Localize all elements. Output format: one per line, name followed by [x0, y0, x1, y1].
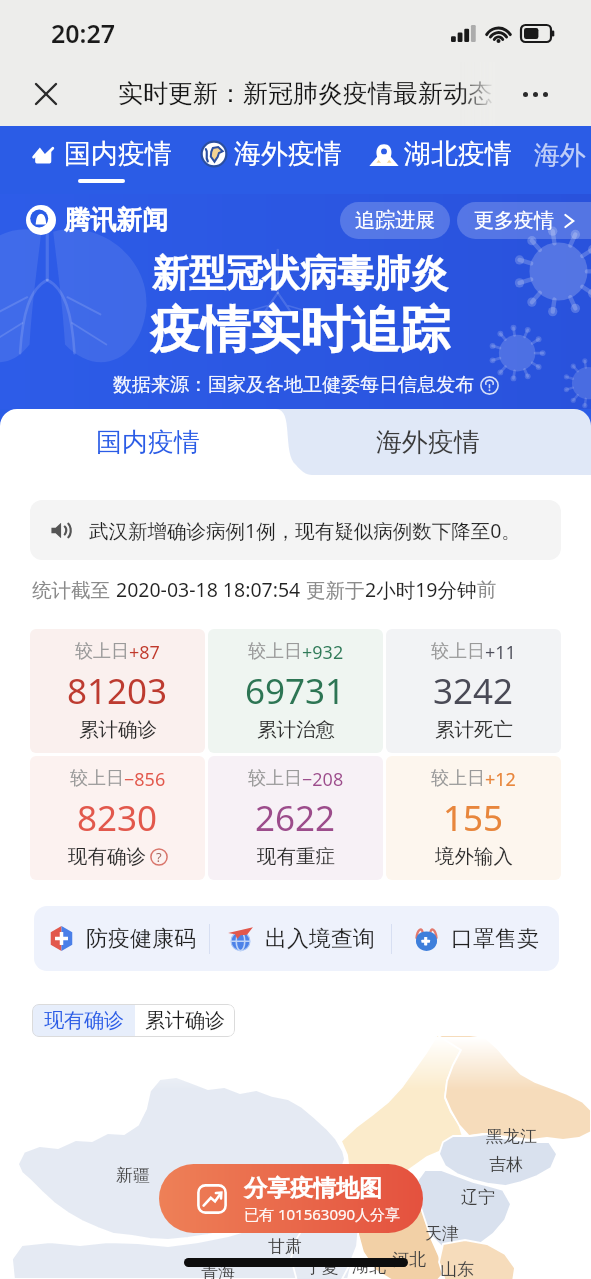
button[interactable]: 追踪进展 — [340, 202, 450, 239]
staticText: 统计截至 — [32, 576, 116, 603]
button[interactable]: 更多疫情 — [457, 202, 591, 239]
staticText: 海外疫情 — [376, 426, 480, 459]
button[interactable]: More options — [523, 72, 567, 116]
staticText: +11 — [485, 640, 516, 665]
staticText: 吉林 — [489, 1154, 523, 1175]
staticText: 累计治愈 — [257, 717, 335, 742]
staticText: 3242 — [433, 667, 514, 715]
staticText: 山东 — [440, 1259, 474, 1279]
staticText: 分享疫情地图 — [244, 1174, 382, 1203]
staticText: 国内疫情 — [96, 426, 200, 459]
button[interactable]: 较上日 — [208, 629, 383, 753]
staticText: 海外疫情 — [234, 137, 342, 171]
staticText: 现有确诊 — [68, 844, 146, 869]
staticText: −856 — [124, 767, 166, 792]
staticText: 前 — [477, 577, 497, 602]
button[interactable]: 现有确诊 — [32, 1004, 135, 1037]
staticText: 青海 — [201, 1262, 235, 1279]
staticText: 出入境查询 — [265, 925, 375, 953]
staticText: 黑龙江 — [486, 1126, 537, 1147]
staticText: 69731 — [245, 667, 346, 715]
staticText: 较上日 — [431, 640, 485, 663]
staticText: 数据来源：国家及各地卫健委每日信息发布 — [113, 373, 474, 397]
staticText: 20:27 — [51, 16, 116, 50]
staticText: 口罩售卖 — [451, 925, 539, 953]
staticText: 宁夏 — [305, 1257, 339, 1278]
button[interactable]: 国内疫情 — [0, 409, 312, 475]
button[interactable]: Close — [24, 72, 68, 116]
staticText: 防疫健康码 — [86, 925, 196, 953]
staticText: 湖北疫情 — [404, 137, 512, 171]
staticText: 追踪进展 — [355, 208, 435, 233]
staticText: 2622 — [255, 794, 336, 842]
button[interactable]: 出入境查询 — [210, 906, 391, 971]
staticText: 境外输入 — [435, 844, 513, 869]
staticText: 较上日 — [431, 767, 485, 790]
staticText: 较上日 — [75, 640, 129, 663]
staticText: 天津 — [425, 1223, 459, 1244]
staticText: 河北 — [392, 1249, 426, 1270]
staticText: 累计确诊 — [145, 1008, 225, 1033]
staticText: 新疆 — [116, 1165, 150, 1186]
staticText: 较上日 — [248, 640, 302, 663]
staticText: 新型冠状病毒肺炎 — [152, 250, 448, 297]
staticText: −208 — [302, 767, 344, 792]
staticText: +87 — [129, 640, 160, 665]
button[interactable]: 海外疫情 — [245, 409, 591, 475]
button[interactable]: 较上日 — [386, 629, 561, 753]
staticText: +932 — [302, 640, 344, 665]
button[interactable]: 较上日 — [208, 756, 383, 880]
staticText: 武汉新增确诊病例1例，现有疑似病例数下降至0。 — [89, 517, 521, 544]
staticText: +12 — [485, 767, 516, 792]
staticText: 155 — [443, 794, 504, 842]
staticText: 实时更新：新冠肺炎疫情最新动态 — [118, 78, 493, 109]
button[interactable]: 海外疫情 — [201, 137, 342, 183]
button[interactable]: 较上日 — [386, 756, 561, 880]
staticText: 国内疫情 — [64, 137, 172, 171]
staticText: 湖北 — [352, 1256, 386, 1277]
staticText: 海外 — [534, 139, 586, 172]
staticText: 现有确诊 — [44, 1008, 124, 1033]
staticText: 较上日 — [248, 767, 302, 790]
button[interactable]: 较上日 — [30, 756, 205, 880]
button[interactable]: 较上日 — [30, 629, 205, 753]
staticText: 8230 — [77, 794, 158, 842]
staticText: 辽宁 — [461, 1187, 495, 1208]
staticText: 2020-03-18 18:07:54 — [116, 576, 301, 603]
staticText: 现有重症 — [257, 844, 335, 869]
staticText: 累计确诊 — [79, 717, 157, 742]
staticText: 更新于 — [301, 576, 365, 603]
staticText: 较上日 — [70, 767, 124, 790]
staticText: 2小时19分钟 — [365, 576, 477, 603]
staticText: ? — [156, 848, 162, 866]
staticText: 已有 101563090人分享 — [244, 1204, 401, 1224]
staticText: 甘肃 — [268, 1236, 302, 1257]
staticText: 累计死亡 — [435, 717, 513, 742]
staticText: 疫情实时追踪 — [150, 299, 450, 362]
button[interactable]: 分享疫情地图 — [159, 1164, 423, 1233]
button[interactable]: 口罩售卖 — [392, 906, 559, 971]
button[interactable]: 防疫健康码 — [34, 906, 209, 971]
staticText: 81203 — [67, 667, 168, 715]
staticText: 腾讯新闻 — [64, 204, 168, 237]
button[interactable]: 国内疫情 — [31, 137, 172, 183]
button[interactable]: 累计确诊 — [135, 1004, 235, 1037]
button[interactable]: 湖北疫情 — [371, 137, 512, 183]
button[interactable]: 武汉新增确诊病例1例，现有疑似病例数下降至0。 — [30, 500, 561, 560]
staticText: 更多疫情 — [474, 208, 554, 233]
